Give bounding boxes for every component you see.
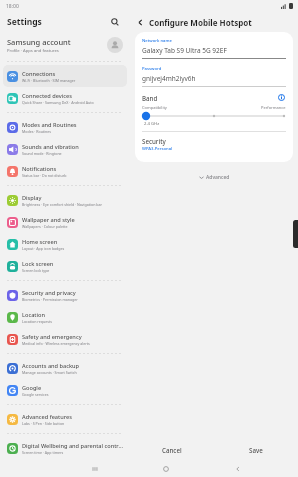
staticText: Samsung account (7, 37, 71, 47)
button[interactable]: Search (108, 15, 122, 29)
staticText: Advanced (206, 174, 230, 181)
button[interactable]: Connected devices (3, 87, 127, 109)
staticText: Location (22, 311, 45, 319)
button[interactable]: Band slider (142, 112, 286, 120)
button[interactable]: Location (3, 306, 127, 328)
staticText: Profile · Apps and features (7, 48, 59, 54)
button[interactable]: Connections (3, 65, 127, 87)
button[interactable]: Sounds and vibration (3, 138, 127, 160)
staticText: Security and privacy (22, 289, 76, 297)
button[interactable]: Home screen (3, 233, 127, 255)
staticText: 2.4 GHz (144, 121, 160, 127)
button[interactable]: Security and privacy (3, 284, 127, 306)
staticText: Biometrics · Permission manager (22, 297, 78, 302)
button[interactable]: Accounts and backup (3, 357, 127, 379)
staticText: Modes · Routines (22, 129, 52, 134)
button[interactable]: Lock screen (3, 255, 127, 277)
staticText: Accounts and backup (22, 362, 80, 370)
button[interactable]: Recents (59, 461, 130, 477)
staticText: Configure Mobile Hotspot (149, 17, 252, 28)
staticText: Google services (22, 392, 49, 397)
button[interactable]: Modes and Routines (3, 116, 127, 138)
button[interactable]: Advanced (130, 171, 298, 183)
staticText: Sounds and vibration (22, 143, 79, 151)
staticText: Save (249, 446, 263, 454)
staticText: Display (22, 194, 42, 202)
staticText: Password (142, 66, 162, 72)
staticText: Connections (22, 70, 56, 78)
staticText: Brightness · Eye comfort shield · Naviga… (22, 202, 103, 207)
staticText: Advanced features (22, 413, 72, 421)
staticText: Layout · App icon badges (22, 246, 65, 251)
staticText: Wallpaper and style (22, 216, 75, 224)
button[interactable]: Wallpaper and style (3, 211, 127, 233)
staticText: Manage accounts · Smart Switch (22, 370, 77, 375)
staticText: Screen time · App timers (22, 450, 64, 455)
staticText: Lock screen (22, 260, 54, 268)
staticText: Security (142, 137, 166, 145)
staticText: Sound mode · Ringtone (22, 151, 62, 156)
staticText: gnijvej4mh2iyv6h (142, 74, 196, 83)
button[interactable]: Samsung account (0, 32, 130, 58)
button[interactable]: Security (142, 137, 286, 152)
staticText: Wi-Fi · Bluetooth · SIM manager (22, 78, 76, 83)
staticText: Network name (142, 38, 172, 44)
button[interactable]: Save (214, 439, 298, 461)
staticText: Settings (7, 16, 42, 28)
staticText: Digital Wellbeing and parental controls (22, 442, 124, 450)
staticText: Galaxy Tab S9 Ultra 5G 92EF (142, 46, 227, 55)
staticText: Location requests (22, 319, 52, 324)
button[interactable]: Band info (277, 93, 286, 102)
staticText: Medical info · Wireless emergency alerts (22, 341, 90, 346)
staticText: Google (22, 384, 42, 392)
button[interactable]: Edge panel handle (293, 220, 298, 248)
button[interactable]: Digital Wellbeing and parental controls (3, 437, 127, 459)
button[interactable]: Back (133, 15, 147, 29)
staticText: Band (142, 94, 277, 102)
staticText: WPA3-Personal (142, 146, 173, 152)
button[interactable]: Notifications (3, 160, 127, 182)
staticText: 18:00 (6, 3, 19, 10)
button[interactable]: Back (202, 461, 274, 477)
button[interactable]: Cancel (130, 439, 214, 461)
staticText: Connected devices (22, 92, 72, 100)
staticText: Compatibility (142, 105, 167, 110)
staticText: Safety and emergency (22, 333, 82, 341)
button[interactable]: Display (3, 189, 127, 211)
staticText: Performance (261, 105, 286, 110)
staticText: Wallpapers · Colour palette (22, 224, 68, 229)
staticText: Home screen (22, 238, 58, 246)
staticText: Status bar · Do not disturb (22, 173, 67, 178)
staticText: Labs · S Pen · Side button (22, 421, 65, 426)
button[interactable]: Safety and emergency (3, 328, 127, 350)
button[interactable]: Advanced features (3, 408, 127, 430)
staticText: Screen lock type (22, 268, 50, 273)
staticText: Cancel (162, 446, 182, 454)
button[interactable]: Google (3, 379, 127, 401)
staticText: Modes and Routines (22, 121, 77, 129)
staticText: Notifications (22, 165, 57, 173)
staticText: Quick Share · Samsung DeX · Android Auto (22, 100, 94, 105)
button[interactable]: Home (130, 461, 202, 477)
